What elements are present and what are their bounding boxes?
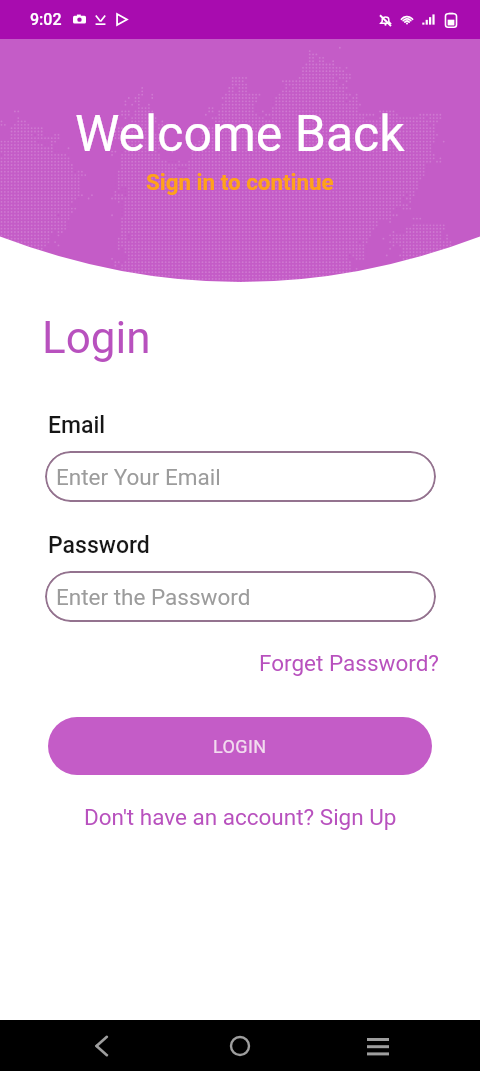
staticText: Sign in to continue [146, 169, 334, 195]
staticText: Password [48, 532, 150, 559]
button[interactable]: Back [67, 1020, 135, 1071]
staticText: Email [48, 412, 106, 439]
button[interactable]: Recent apps [344, 1020, 412, 1071]
staticText: Welcome Back [75, 105, 405, 164]
staticText: Enter the Password [56, 584, 251, 610]
button[interactable]: LOGIN [48, 717, 432, 775]
staticText: Login [42, 312, 151, 364]
button[interactable]: Don't have an account? Sign Up [84, 804, 397, 830]
button[interactable]: Forget Password? [259, 650, 439, 676]
button[interactable]: Enter the Password [45, 571, 436, 622]
staticText: LOGIN [213, 736, 267, 757]
button[interactable]: Enter Your Email [45, 451, 436, 502]
staticText: Enter Your Email [56, 464, 221, 490]
staticText: 9:02 [30, 10, 62, 29]
button[interactable]: Home [206, 1020, 274, 1071]
